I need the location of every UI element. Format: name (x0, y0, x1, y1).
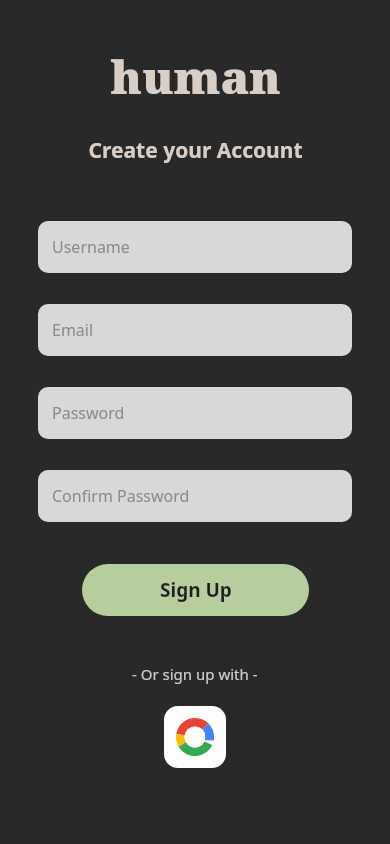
button[interactable]: Sign Up (82, 564, 309, 616)
staticText: Confirm Password (52, 485, 190, 507)
staticText: Create your Account (88, 136, 303, 165)
staticText: Username (52, 236, 130, 258)
staticText: human (110, 45, 281, 108)
button[interactable]: Confirm Password (38, 470, 352, 522)
staticText: Password (52, 402, 125, 424)
button[interactable]: Email (38, 304, 352, 356)
button[interactable]: Username (38, 221, 352, 273)
button[interactable]: Password (38, 387, 352, 439)
staticText: - Or sign up with - (132, 664, 258, 684)
staticText: Email (52, 319, 94, 341)
staticText: Sign Up (160, 577, 232, 603)
button[interactable]: Sign up with Google (164, 706, 226, 768)
